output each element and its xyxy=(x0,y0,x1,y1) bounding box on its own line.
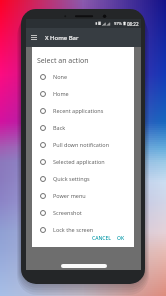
button[interactable]: CANCEL xyxy=(89,234,114,243)
staticText: Select an action xyxy=(37,56,89,66)
button[interactable]: Home xyxy=(32,85,134,102)
staticText: X Home Bar xyxy=(45,34,79,42)
staticText: Screenshot xyxy=(53,209,82,216)
staticText: None xyxy=(53,73,68,80)
button[interactable]: OK xyxy=(114,234,128,243)
button[interactable]: Power menu xyxy=(32,187,134,204)
staticText: CANCEL xyxy=(92,235,111,242)
button[interactable]: Pull down notification xyxy=(32,136,134,153)
button[interactable]: Screenshot xyxy=(32,204,134,221)
staticText: Lock the screen xyxy=(53,226,94,233)
staticText: OK xyxy=(117,235,125,242)
staticText: Selected application xyxy=(53,158,105,165)
button[interactable]: Recent applications xyxy=(32,102,134,119)
staticText: 97% xyxy=(114,21,122,26)
button[interactable]: Open navigation menu xyxy=(27,31,40,44)
button[interactable]: Back xyxy=(32,119,134,136)
button[interactable]: Selected application xyxy=(32,153,134,170)
staticText: Back xyxy=(53,124,66,131)
button[interactable]: Lock the screen xyxy=(32,221,134,238)
staticText: Pull down notification xyxy=(53,141,110,148)
button[interactable]: Quick settings xyxy=(32,170,134,187)
button[interactable]: None xyxy=(32,68,134,85)
staticText: Quick settings xyxy=(53,175,90,182)
staticText: 08:22 xyxy=(127,21,139,27)
staticText: Recent applications xyxy=(53,107,104,114)
staticText: Home xyxy=(53,90,69,97)
staticText: Power menu xyxy=(53,192,86,199)
